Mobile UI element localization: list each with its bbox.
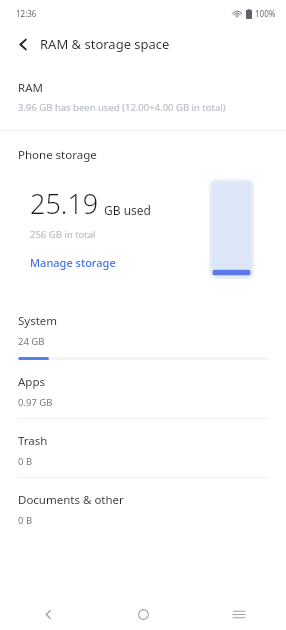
staticText: 0 B xyxy=(18,514,33,527)
staticText: 0.97 GB xyxy=(18,396,53,409)
staticText: 0 B xyxy=(18,455,33,468)
staticText: RAM & storage space xyxy=(40,35,170,53)
staticText: Trash xyxy=(18,433,48,449)
button[interactable]: Documents & other xyxy=(0,492,286,550)
staticText: 3.96 GB has been used (12.00+4.00 GB in … xyxy=(18,101,226,114)
staticText: 12:36 xyxy=(16,8,37,19)
button[interactable]: System xyxy=(0,313,286,374)
staticText: Apps xyxy=(18,374,46,390)
staticText: Manage storage xyxy=(30,255,116,270)
staticText: 100% xyxy=(255,8,276,19)
staticText: 256 GB in total xyxy=(30,228,96,241)
button[interactable]: Manage storage xyxy=(30,255,116,270)
button[interactable]: Recent apps xyxy=(191,598,286,630)
button[interactable]: Trash xyxy=(0,433,286,492)
button[interactable]: RAM xyxy=(0,62,286,130)
button[interactable]: Back xyxy=(8,29,38,59)
staticText: System xyxy=(18,313,58,329)
staticText: 24 GB xyxy=(18,335,45,348)
staticText: RAM xyxy=(18,80,43,96)
staticText: GB used xyxy=(104,202,151,218)
staticText: Phone storage xyxy=(18,147,97,163)
staticText: 25.19 xyxy=(30,185,99,222)
button[interactable]: Apps xyxy=(0,374,286,433)
button[interactable]: Back xyxy=(0,598,96,630)
button[interactable]: Home xyxy=(96,598,191,630)
staticText: Documents & other xyxy=(18,492,124,508)
